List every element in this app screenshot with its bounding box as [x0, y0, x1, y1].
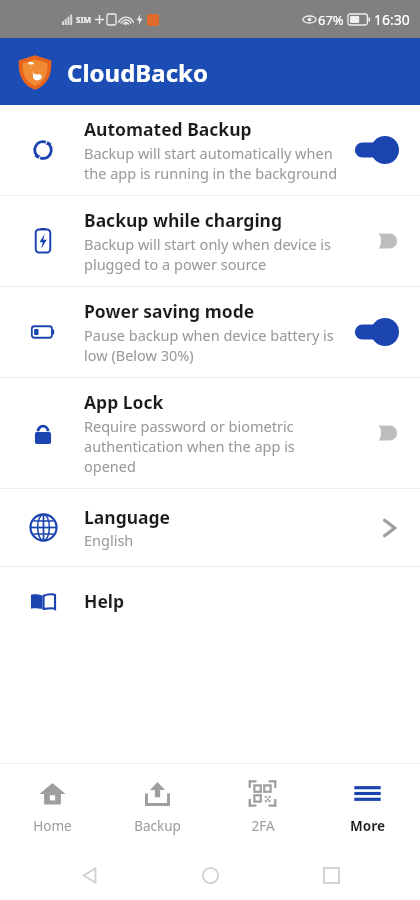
- staticText: Pause backup when device battery is low …: [84, 325, 340, 365]
- button[interactable]: Backup: [105, 764, 210, 850]
- button[interactable]: More: [315, 764, 420, 850]
- other: Backup while charging: [30, 228, 56, 254]
- staticText: Backup: [134, 817, 181, 835]
- other: App lock: [30, 420, 56, 446]
- button[interactable]: Home: [0, 764, 105, 850]
- button[interactable]: Power saving mode: [0, 287, 420, 377]
- button[interactable]: Toggle off: [350, 225, 402, 257]
- other: Automated backup: [30, 137, 56, 163]
- staticText: 16:30: [374, 10, 410, 29]
- other: Help: [29, 587, 57, 615]
- button[interactable]: Help: [0, 567, 420, 635]
- button[interactable]: Back: [65, 851, 113, 899]
- staticText: CloudBacko: [67, 56, 208, 89]
- staticText: Language: [84, 505, 171, 529]
- button[interactable]: Toggle on: [350, 134, 402, 166]
- staticText: 67%: [318, 11, 344, 29]
- staticText: English: [84, 530, 134, 550]
- button[interactable]: Recent apps: [307, 851, 355, 899]
- button[interactable]: Home: [186, 851, 234, 899]
- staticText: Backup will start automatically when the…: [84, 143, 340, 183]
- button[interactable]: Backup while charging: [0, 196, 420, 286]
- staticText: Backup while charging: [84, 208, 283, 232]
- staticText: Require password or biometric authentica…: [84, 416, 340, 476]
- button[interactable]: Automated backup: [0, 105, 420, 195]
- button[interactable]: 2FA: [210, 764, 315, 850]
- staticText: More: [350, 817, 385, 835]
- staticText: Power saving mode: [84, 299, 255, 323]
- staticText: Help: [84, 589, 125, 613]
- staticText: App Lock: [84, 390, 164, 414]
- staticText: 2FA: [251, 817, 275, 835]
- button[interactable]: App lock: [0, 378, 420, 488]
- button[interactable]: Language: [0, 489, 420, 566]
- staticText: Backup will start only when device is pl…: [84, 234, 340, 274]
- staticText: Home: [33, 817, 72, 835]
- button[interactable]: Toggle off: [350, 417, 402, 449]
- staticText: Automated Backup: [84, 117, 252, 141]
- other: Power saving mode: [30, 319, 56, 345]
- button[interactable]: Toggle on: [350, 316, 402, 348]
- staticText: SIM: [76, 14, 92, 25]
- other: Language: [29, 513, 58, 542]
